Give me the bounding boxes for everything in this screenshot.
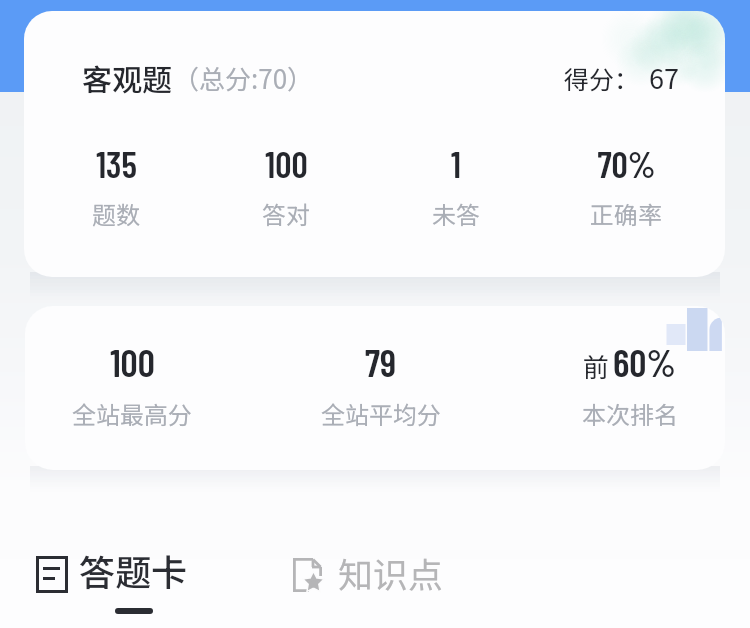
staticText: 知识点 — [338, 547, 444, 598]
staticText: 正确率 — [590, 196, 662, 231]
staticText: 得分： — [564, 60, 640, 96]
button[interactable]: 100 — [25, 306, 725, 470]
staticText: 70% — [597, 142, 656, 185]
staticText: 79 — [365, 339, 396, 385]
staticText: 答题卡 — [79, 544, 188, 596]
staticText: （总分:70） — [173, 59, 314, 97]
staticText: 1 — [451, 142, 461, 185]
staticText: 100 — [110, 339, 155, 385]
staticText: 全站最高分 — [72, 396, 192, 431]
staticText: 本次排名 — [582, 396, 678, 431]
staticText: 60% — [613, 339, 676, 385]
staticText: 135 — [96, 142, 137, 185]
staticText: 100 — [265, 142, 308, 185]
staticText: 前 — [583, 347, 610, 385]
staticText: 题数 — [92, 196, 140, 231]
button[interactable]: 答题卡 — [30, 540, 194, 618]
staticText: 全站平均分 — [321, 396, 441, 431]
button[interactable]: 知识点 — [287, 543, 450, 602]
button[interactable]: 客观题 — [24, 11, 725, 277]
staticText: 客观题 — [82, 56, 172, 99]
staticText: 答对 — [262, 196, 310, 231]
staticText: 67 — [649, 58, 679, 97]
staticText: 未答 — [432, 196, 480, 231]
